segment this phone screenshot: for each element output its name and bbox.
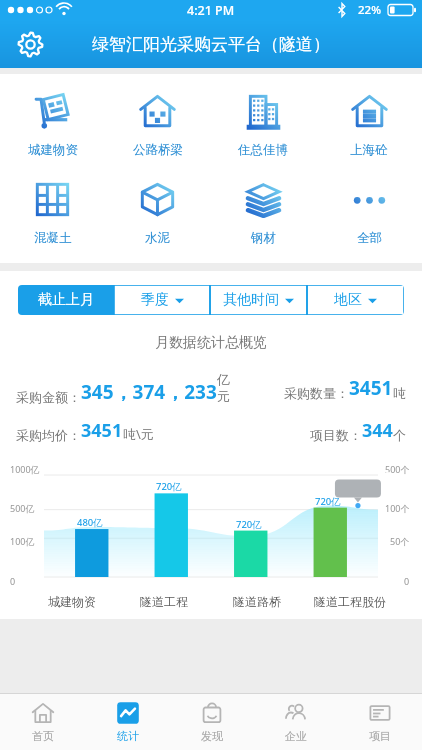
staticText: 344: [362, 418, 393, 443]
staticText: 0: [404, 575, 410, 587]
staticText: 季度: [141, 291, 169, 309]
staticText: 隧道工程: [140, 594, 188, 609]
staticText: 亿元: [217, 371, 236, 405]
staticText: 720亿: [315, 495, 341, 508]
staticText: 720亿: [236, 518, 262, 531]
button[interactable]: 统计: [85, 694, 170, 750]
staticText: 500亿: [10, 502, 35, 514]
button[interactable]: 发现: [170, 694, 254, 750]
staticText: 隧道路桥: [233, 594, 281, 609]
staticText: 城建物资: [28, 142, 78, 158]
staticText: 项目: [369, 729, 391, 743]
button[interactable]: 截止上月: [18, 285, 114, 315]
staticText: 3451: [81, 418, 123, 443]
staticText: 100亿: [10, 535, 35, 547]
button[interactable]: Settings: [9, 23, 51, 65]
staticText: 钢材: [251, 230, 276, 246]
button[interactable]: 水泥: [105, 177, 210, 248]
button[interactable]: 钢材: [210, 177, 316, 248]
staticText: 采购均价：: [16, 427, 81, 443]
button[interactable]: 地区: [307, 285, 404, 315]
staticText: 345，374，233: [81, 379, 217, 405]
button[interactable]: 企业: [254, 694, 338, 750]
staticText: 截止上月: [38, 291, 94, 309]
button[interactable]: 住总佳博: [210, 89, 316, 160]
staticText: 城建物资: [48, 594, 96, 609]
staticText: 480亿: [77, 516, 103, 529]
staticText: 吨\元: [123, 425, 154, 443]
staticText: 500个: [385, 463, 410, 475]
staticText: 1000亿: [10, 463, 40, 475]
staticText: 水泥: [145, 230, 170, 246]
staticText: 22%: [358, 2, 381, 18]
button[interactable]: 混凝土: [0, 177, 105, 248]
staticText: 采购数量：: [284, 385, 349, 401]
staticText: 50个: [390, 535, 410, 547]
button[interactable]: 城建物资: [0, 89, 105, 160]
staticText: 全部: [357, 230, 382, 246]
staticText: 公路桥梁: [133, 142, 183, 158]
button[interactable]: 上海砼: [316, 89, 422, 160]
staticText: 50: [379, 469, 391, 483]
staticText: 绿智汇阳光采购云平台（隧道）: [92, 34, 330, 55]
staticText: 首页: [32, 729, 54, 743]
staticText: 发现: [201, 729, 223, 743]
button[interactable]: 其他时间: [210, 285, 307, 315]
staticText: 3451: [349, 375, 393, 401]
button[interactable]: 季度: [114, 285, 210, 315]
staticText: 上海砼: [350, 142, 388, 158]
staticText: 吨: [393, 385, 406, 401]
staticText: 0: [10, 575, 16, 587]
staticText: 混凝土: [34, 230, 72, 246]
staticText: 采购金额：: [16, 389, 81, 405]
button[interactable]: 项目: [338, 694, 422, 750]
staticText: 住总佳博: [238, 142, 288, 158]
staticText: 720亿: [156, 480, 182, 493]
staticText: 月数据统计总概览: [0, 334, 422, 352]
staticText: 4:21 PM: [187, 2, 235, 19]
staticText: 个: [393, 427, 406, 443]
button[interactable]: 全部: [316, 177, 422, 248]
button[interactable]: 公路桥梁: [105, 89, 210, 160]
staticText: 项目数：: [310, 427, 362, 443]
staticText: 100个: [385, 502, 410, 514]
staticText: 其他时间: [223, 291, 279, 309]
button[interactable]: 首页: [0, 694, 85, 750]
staticText: 隧道工程股份: [314, 594, 386, 609]
staticText: 地区: [334, 291, 362, 309]
staticText: 统计: [117, 729, 139, 743]
staticText: 企业: [285, 729, 307, 743]
